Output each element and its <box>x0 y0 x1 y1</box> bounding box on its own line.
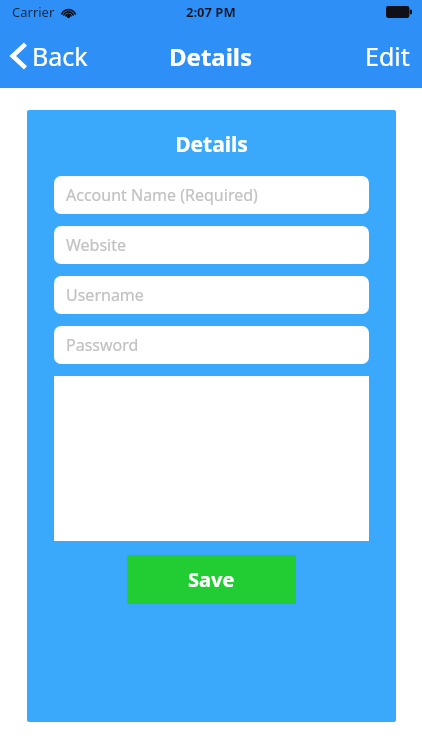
staticText: Details <box>169 40 253 73</box>
staticText: Website <box>66 234 127 256</box>
staticText: Password <box>66 334 139 356</box>
button[interactable]: Password <box>54 326 369 364</box>
button[interactable]: Back <box>0 31 100 81</box>
staticText: Edit <box>365 39 410 73</box>
button[interactable]: Username <box>54 276 369 314</box>
button[interactable]: Edit <box>353 31 422 81</box>
staticText: Carrier <box>12 3 55 21</box>
button[interactable]: Website <box>54 226 369 264</box>
staticText: Account Name (Required) <box>66 184 258 206</box>
staticText: Details <box>54 130 369 159</box>
staticText: Username <box>66 284 144 306</box>
button[interactable]: Save <box>127 555 296 604</box>
staticText: Save <box>188 566 235 593</box>
staticText: 2:07 PM <box>186 3 236 21</box>
staticText: Back <box>32 39 88 73</box>
button[interactable]: Account Name (Required) <box>54 176 369 214</box>
